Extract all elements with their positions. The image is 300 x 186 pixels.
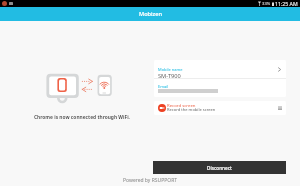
button[interactable]: Record screen	[154, 101, 286, 115]
staticText: Email	[158, 84, 169, 89]
staticText: Powered by RSUPPORT	[123, 177, 178, 184]
button[interactable]: Email	[154, 79, 286, 97]
staticText: Chrome is now connected through WiFi.	[34, 114, 130, 121]
staticText: SM-T900	[158, 72, 181, 80]
staticText: Mobile name	[158, 67, 183, 72]
button[interactable]: Disconnect	[153, 161, 286, 174]
staticText: 11:25 AM	[275, 0, 298, 7]
staticText: Record the mobile screen	[167, 107, 216, 113]
staticText: Mobizen	[139, 10, 162, 18]
staticText: 33%	[262, 1, 271, 7]
button[interactable]: Mobile name	[154, 60, 286, 78]
other: Options	[278, 106, 282, 110]
staticText: Disconnect	[207, 165, 232, 171]
staticText: Record screen	[167, 102, 196, 108]
